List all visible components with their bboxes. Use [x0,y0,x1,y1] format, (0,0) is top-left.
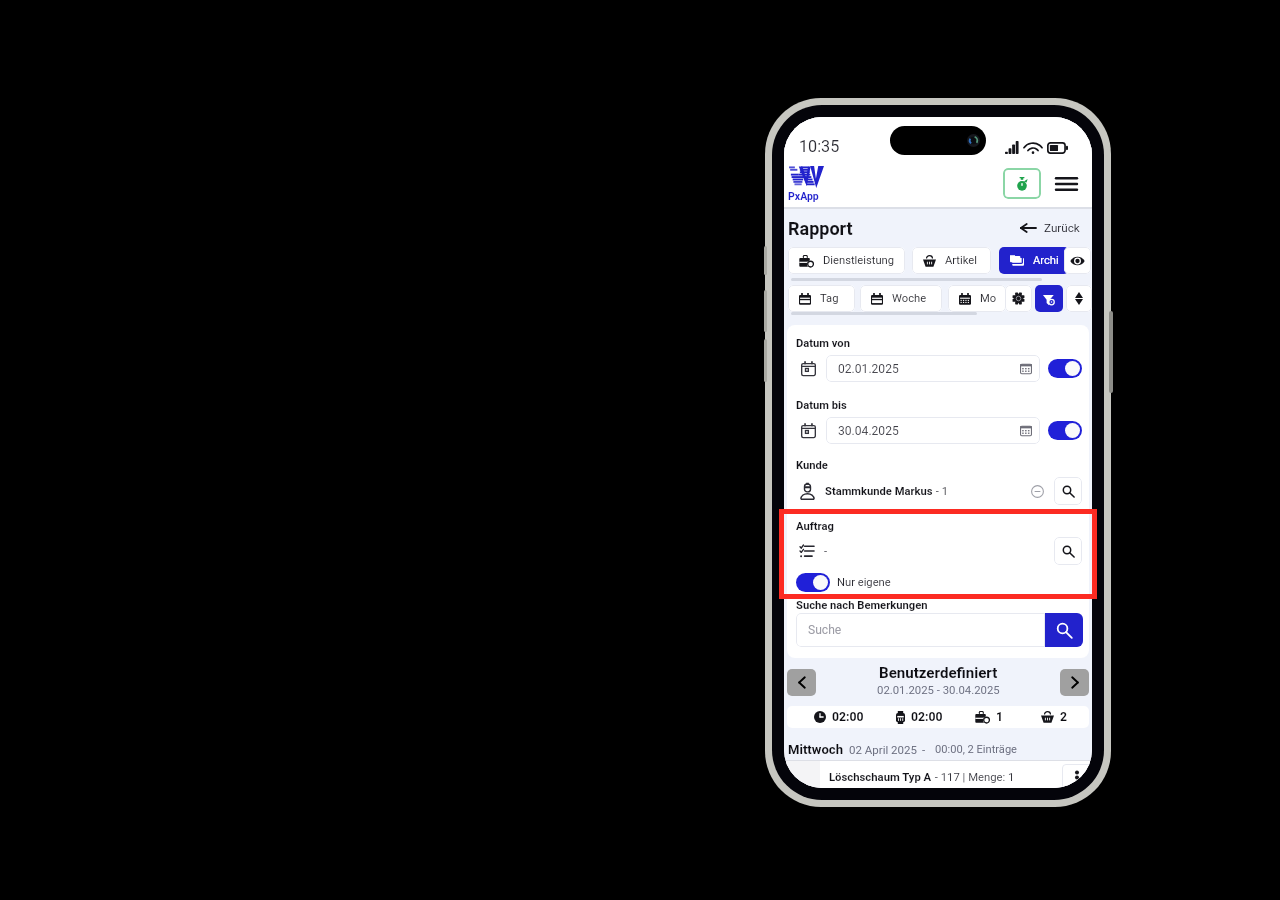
staticText: - 117 | Menge: 1 [932,771,1015,784]
staticText: Tag [820,292,839,305]
button[interactable]: Previous period [787,669,816,696]
button[interactable]: Toggle [1048,359,1082,378]
button[interactable]: 02.01.2025 [826,355,1040,382]
staticText: Dienstleistung [823,254,895,267]
button[interactable]: Tag [788,285,855,312]
staticText: Benutzerdefiniert [879,664,998,682]
button[interactable]: Sort [1066,285,1092,312]
button[interactable]: Archi [999,247,1069,274]
staticText: Nur eigene [837,576,891,589]
button[interactable]: Zurück [1020,221,1080,235]
button[interactable]: Suche [796,613,1045,647]
button[interactable]: Clear customer [1029,483,1045,499]
staticText: Mo [980,292,997,305]
button[interactable]: 30.04.2025 [826,417,1040,444]
button[interactable]: Settings [1005,285,1032,312]
button[interactable]: Search customer [1054,477,1082,505]
staticText: 02:00 [832,710,864,724]
staticText: 00:00, 2 Einträge [935,743,1017,756]
button[interactable]: Preview [1064,247,1091,274]
staticText: 02.01.2025 [838,362,899,376]
staticText: 02:00 [911,710,943,724]
staticText: Suche [808,623,842,637]
staticText: Artikel [945,254,977,267]
staticText: PxApp [788,190,819,202]
button[interactable]: Woche [860,285,942,312]
button[interactable]: Dienstleistung [788,247,905,274]
button[interactable]: Menu [1054,171,1078,197]
button[interactable]: Start timer [1003,168,1041,199]
button[interactable]: More options [1062,764,1092,788]
button[interactable]: Next period [1060,669,1089,696]
staticText: 02.01.2025 - 30.04.2025 [877,683,1000,696]
staticText: 02 April 2025 [849,743,917,756]
staticText: Rapport [788,218,853,239]
button[interactable]: Toggle [796,573,830,592]
staticText: Kunde [796,459,828,472]
staticText: Suche nach Bemerkungen [796,599,928,612]
staticText: 10:35 [799,137,840,156]
button[interactable]: Mo [948,285,1006,312]
button[interactable]: Search [1045,613,1083,647]
staticText: Archi [1033,254,1059,267]
staticText: 1 [996,710,1003,724]
staticText: Datum von [796,337,850,350]
staticText: Datum bis [796,399,847,412]
button[interactable]: Artikel [912,247,991,274]
staticText: Stammkunde Markus [825,485,933,498]
button[interactable]: Toggle [1048,421,1082,440]
button[interactable]: Filter [1035,285,1063,312]
staticText: 30.04.2025 [838,424,899,438]
staticText: - 1 [933,485,948,498]
staticText: Auftrag [796,520,834,533]
staticText: - [824,545,1054,558]
button[interactable]: Search order [1054,537,1082,565]
staticText: - [922,743,926,756]
staticText: Löschschaum Typ A [829,771,932,784]
staticText: Zurück [1044,221,1080,235]
staticText: Woche [892,292,927,305]
staticText: 2 [1060,710,1067,724]
staticText: Mittwoch [788,742,843,757]
